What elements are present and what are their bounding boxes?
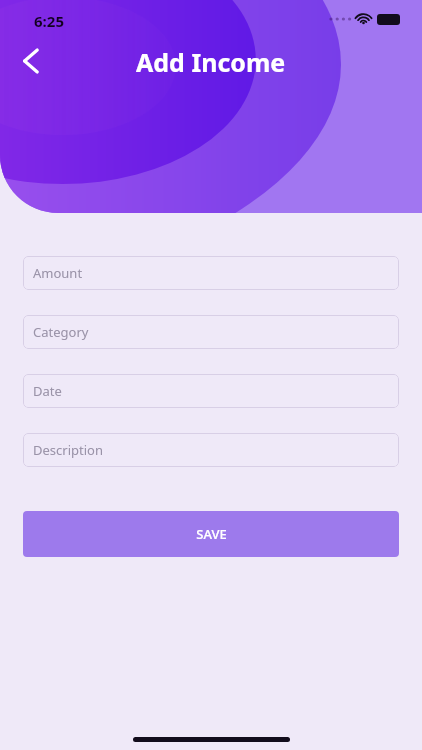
button[interactable]: Amount: [23, 256, 399, 290]
staticText: Add Income: [136, 45, 286, 79]
staticText: Date: [33, 382, 62, 400]
button[interactable]: Category: [23, 315, 399, 349]
staticText: Description: [33, 441, 103, 459]
staticText: Category: [33, 323, 89, 341]
button[interactable]: Date: [23, 374, 399, 408]
staticText: Amount: [33, 264, 83, 282]
button[interactable]: Description: [23, 433, 399, 467]
staticText: SAVE: [196, 525, 227, 543]
button[interactable]: Back: [8, 40, 50, 82]
button[interactable]: SAVE: [23, 511, 399, 557]
staticText: 6:25: [34, 11, 64, 31]
